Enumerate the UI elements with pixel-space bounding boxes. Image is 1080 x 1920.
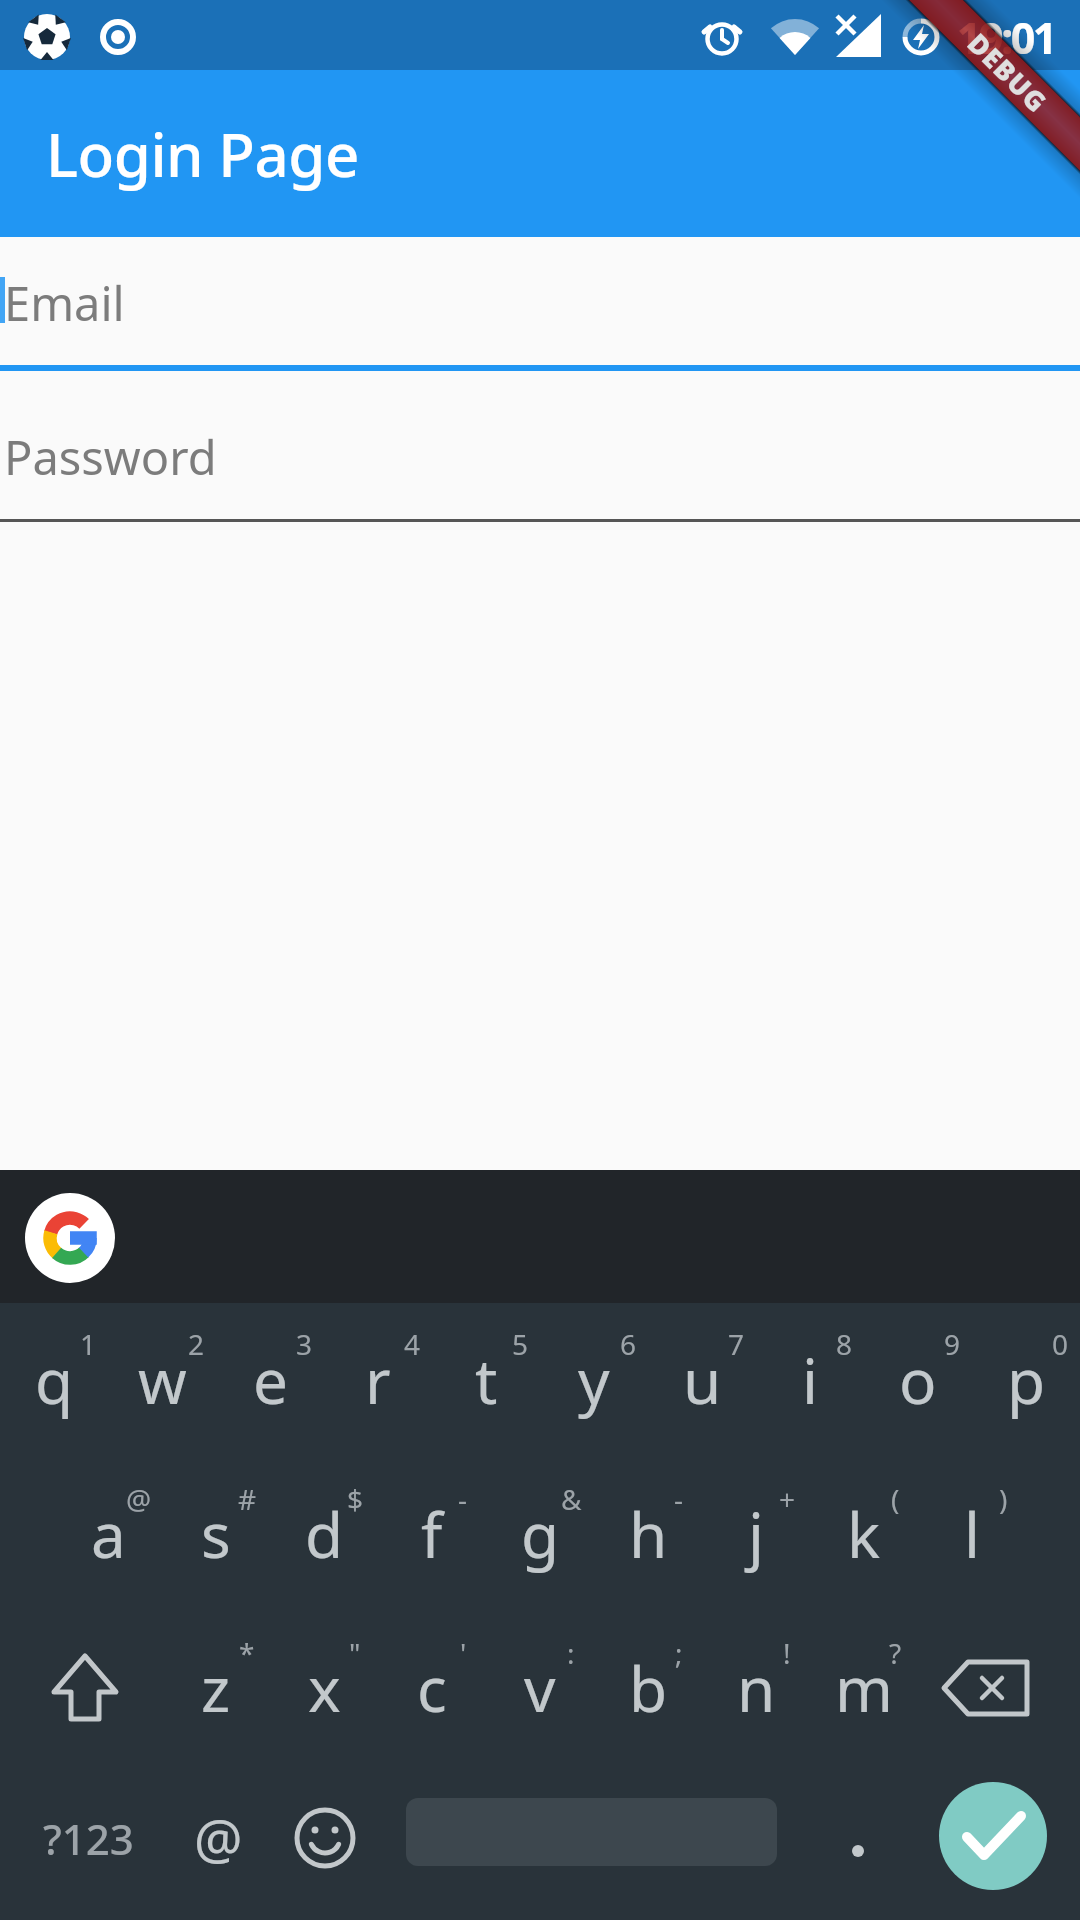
staticText: -: [458, 1480, 468, 1518]
staticText: 1: [80, 1325, 97, 1363]
button[interactable]: m: [810, 1611, 918, 1765]
button[interactable]: @: [108, 1778, 328, 1898]
button[interactable]: r: [324, 1303, 432, 1457]
staticText: 6: [620, 1325, 637, 1363]
staticText: d: [305, 1492, 344, 1576]
button[interactable]: y: [540, 1303, 648, 1457]
staticText: f: [421, 1492, 443, 1576]
staticText: ?: [889, 1634, 902, 1672]
button[interactable]: [14, 1611, 162, 1765]
button[interactable]: s: [162, 1457, 270, 1611]
staticText: u: [683, 1338, 722, 1422]
staticText: l: [964, 1492, 980, 1576]
button[interactable]: [27, 1195, 113, 1281]
staticText: $: [347, 1480, 364, 1518]
staticText: :: [567, 1634, 575, 1672]
staticText: #: [238, 1480, 257, 1518]
staticText: x: [308, 1646, 341, 1730]
button[interactable]: [918, 1611, 1066, 1765]
button[interactable]: z: [162, 1611, 270, 1765]
button[interactable]: [275, 1778, 375, 1898]
staticText: !: [783, 1634, 791, 1672]
staticText: +: [779, 1480, 796, 1518]
staticText: 2: [188, 1325, 205, 1363]
staticText: r: [365, 1338, 391, 1422]
staticText: ): [999, 1480, 1008, 1518]
button[interactable]: l: [918, 1457, 1026, 1611]
button[interactable]: p: [972, 1303, 1080, 1457]
button[interactable]: [939, 1782, 1047, 1890]
staticText: Email: [4, 271, 125, 335]
staticText: -: [674, 1480, 684, 1518]
staticText: n: [737, 1646, 776, 1730]
staticText: 9: [944, 1325, 961, 1363]
button[interactable]: o: [864, 1303, 972, 1457]
staticText: &: [561, 1480, 582, 1518]
staticText: @: [194, 1801, 243, 1875]
staticText: (: [891, 1480, 900, 1518]
staticText: v: [524, 1646, 556, 1730]
staticText: k: [847, 1492, 881, 1576]
staticText: ": [349, 1634, 361, 1672]
staticText: g: [521, 1492, 560, 1576]
button[interactable]: Password: [0, 390, 1080, 522]
button[interactable]: w: [108, 1303, 216, 1457]
staticText: w: [138, 1338, 187, 1422]
staticText: 4: [404, 1325, 421, 1363]
button[interactable]: e: [216, 1303, 324, 1457]
staticText: m: [835, 1646, 893, 1730]
button[interactable]: g: [486, 1457, 594, 1611]
button[interactable]: a: [54, 1457, 162, 1611]
button[interactable]: Email: [0, 240, 1080, 371]
button[interactable]: b: [594, 1611, 702, 1765]
button[interactable]: j: [702, 1457, 810, 1611]
staticText: h: [629, 1492, 668, 1576]
button[interactable]: i: [756, 1303, 864, 1457]
button[interactable]: h: [594, 1457, 702, 1611]
staticText: j: [748, 1492, 764, 1576]
staticText: t: [475, 1338, 498, 1422]
staticText: a: [91, 1492, 126, 1576]
button[interactable]: v: [486, 1611, 594, 1765]
staticText: b: [629, 1646, 668, 1730]
staticText: *: [239, 1634, 255, 1672]
button[interactable]: ?123: [0, 1778, 198, 1898]
staticText: ?123: [43, 1810, 134, 1867]
staticText: ;: [675, 1634, 683, 1672]
staticText: Login Page: [46, 113, 359, 195]
staticText: e: [253, 1338, 288, 1422]
staticText: DEBUG: [960, 25, 1056, 121]
button[interactable]: f: [378, 1457, 486, 1611]
staticText: y: [578, 1338, 610, 1422]
button[interactable]: t: [432, 1303, 540, 1457]
staticText: o: [899, 1338, 937, 1422]
staticText: 19:01: [957, 8, 1055, 67]
staticText: i: [802, 1338, 818, 1422]
staticText: @: [126, 1480, 152, 1518]
staticText: Password: [4, 425, 217, 489]
button[interactable]: k: [810, 1457, 918, 1611]
staticText: 8: [836, 1325, 853, 1363]
staticText: z: [201, 1646, 231, 1730]
staticText: ': [460, 1634, 467, 1672]
button[interactable]: d: [270, 1457, 378, 1611]
button[interactable]: x: [270, 1611, 378, 1765]
button[interactable]: u: [648, 1303, 756, 1457]
button[interactable]: n: [702, 1611, 810, 1765]
button[interactable]: c: [378, 1611, 486, 1765]
staticText: q: [35, 1338, 74, 1422]
staticText: p: [1007, 1338, 1046, 1422]
staticText: 3: [296, 1325, 313, 1363]
staticText: 5: [512, 1325, 529, 1363]
staticText: s: [201, 1492, 231, 1576]
button[interactable]: q: [0, 1303, 108, 1457]
staticText: 7: [728, 1325, 745, 1363]
staticText: c: [417, 1646, 447, 1730]
staticText: 0: [1052, 1325, 1069, 1363]
